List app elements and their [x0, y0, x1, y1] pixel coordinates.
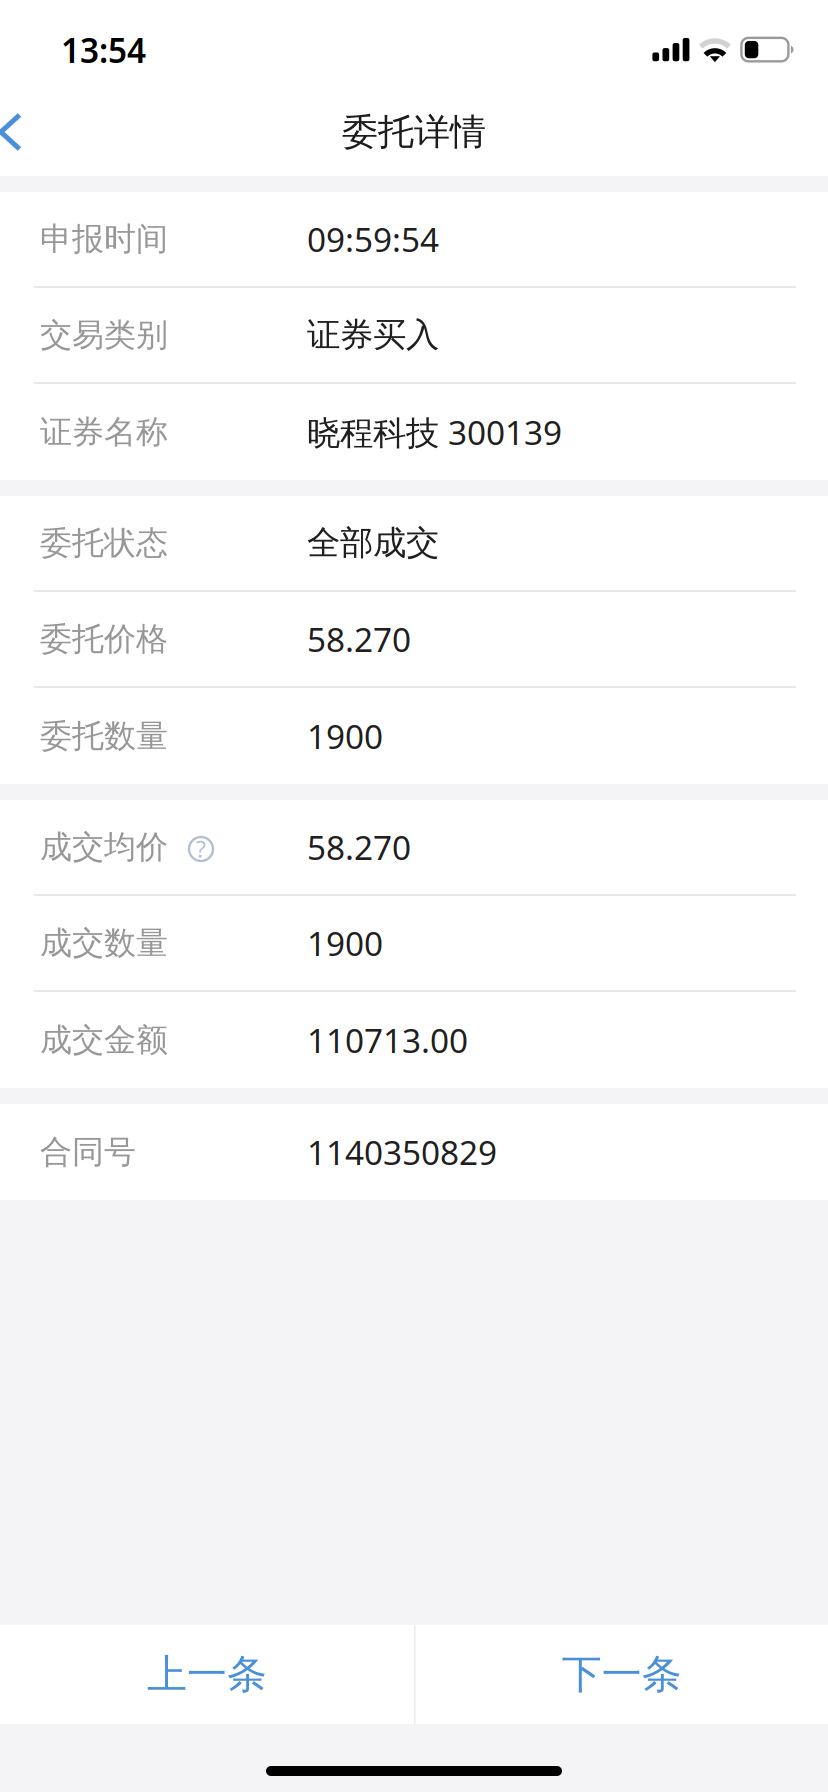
staticText: 晓程科技 300139 — [307, 410, 562, 454]
staticText: 上一条 — [147, 1650, 267, 1699]
staticText: 申报时间 — [40, 219, 168, 259]
staticText: 58.270 — [307, 617, 411, 661]
staticText: 委托价格 — [40, 619, 168, 659]
staticText: 委托详情 — [342, 110, 486, 154]
staticText: 13:54 — [61, 28, 146, 72]
staticText: 合同号 — [40, 1132, 136, 1172]
staticText: 证券名称 — [40, 412, 168, 452]
staticText: 1900 — [307, 921, 383, 965]
staticText: 证券买入 — [307, 314, 439, 355]
staticText: 全部成交 — [307, 522, 439, 563]
staticText: 1140350829 — [307, 1130, 497, 1174]
staticText: 委托状态 — [40, 523, 168, 563]
staticText: 成交均价 — [40, 827, 168, 867]
staticText: ? — [196, 834, 206, 864]
button[interactable]: 上一条 — [0, 1625, 414, 1724]
staticText: 58.270 — [307, 825, 411, 869]
button[interactable]: 下一条 — [415, 1625, 828, 1724]
button[interactable]: 返回 — [0, 88, 60, 176]
button[interactable]: 成交均价说明 — [168, 833, 213, 861]
staticText: 下一条 — [562, 1650, 682, 1699]
staticText: 委托数量 — [40, 716, 168, 756]
staticText: 09:59:54 — [307, 217, 439, 261]
staticText: 成交数量 — [40, 923, 168, 963]
staticText: 交易类别 — [40, 315, 168, 355]
staticText: 110713.00 — [307, 1018, 468, 1062]
staticText: 1900 — [307, 714, 383, 758]
staticText: 成交金额 — [40, 1020, 168, 1060]
